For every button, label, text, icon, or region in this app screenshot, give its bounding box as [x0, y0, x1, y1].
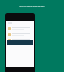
staticText: Take your courses to the next level [0, 5, 64, 7]
